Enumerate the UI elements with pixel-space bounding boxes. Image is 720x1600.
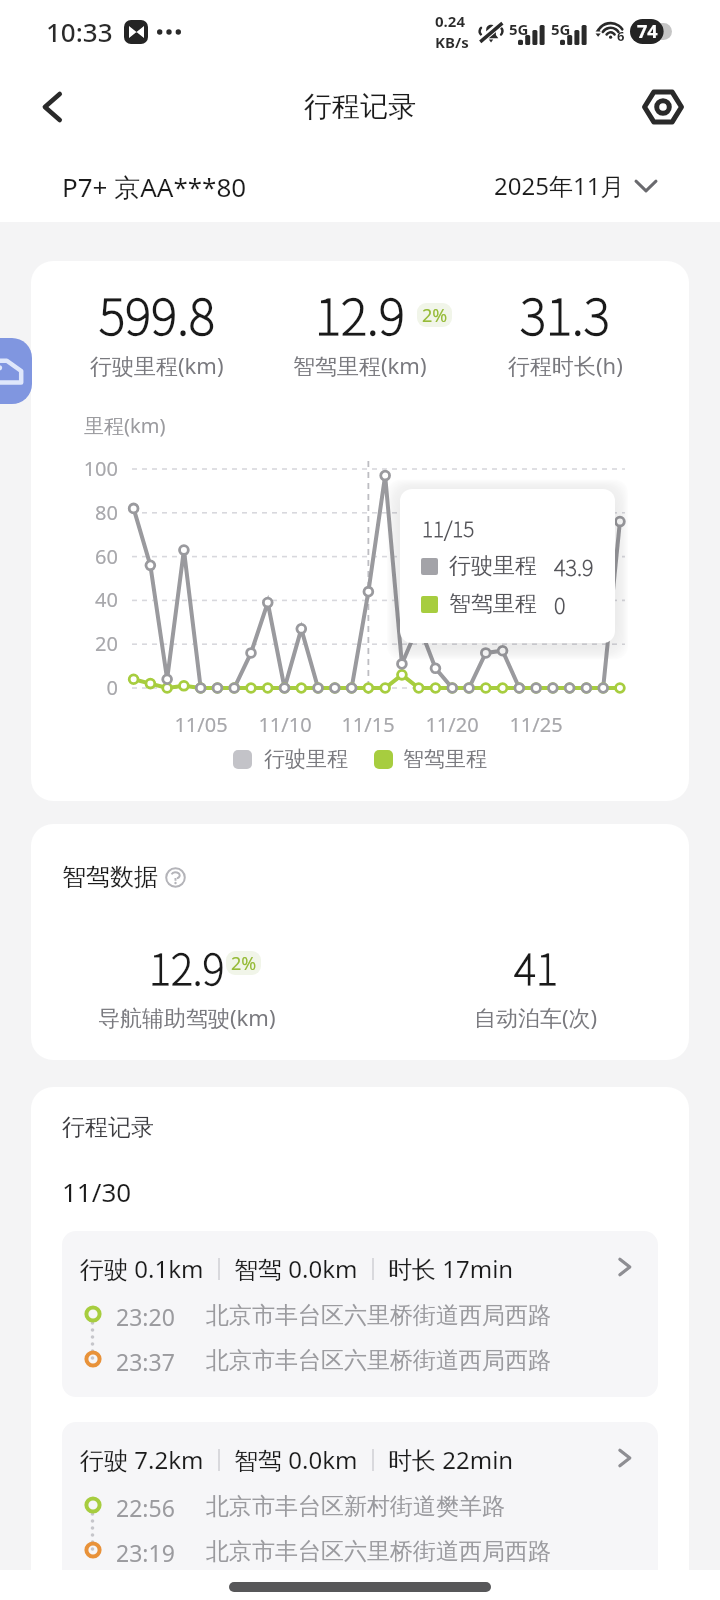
staticText: 0 (38, 674, 118, 701)
staticText: 23:19 (116, 1537, 175, 1568)
staticText: 6 (617, 27, 625, 45)
staticText: 23:20 (116, 1301, 175, 1332)
staticText: 北京市丰台区六里桥街道西局西路 (206, 1301, 551, 1330)
staticText: 11/30 (62, 1174, 132, 1209)
staticText: 0 (554, 588, 566, 620)
staticText: 行驶里程 (264, 746, 348, 772)
staticText: 20 (38, 630, 118, 657)
staticText: 0.24 (435, 11, 465, 31)
staticText: 23:37 (116, 1346, 175, 1377)
staticText: 80 (38, 499, 118, 526)
staticText: 11/15 (328, 711, 408, 738)
staticText: 智驾 0.0km (234, 1443, 358, 1476)
staticText: 行驶 7.2km (80, 1443, 204, 1476)
staticText: 599.8 (99, 277, 215, 349)
staticText: 行程记录 (304, 89, 416, 124)
staticText: 100 (38, 455, 118, 482)
staticText: 74 (637, 19, 658, 44)
staticText: 5G (509, 19, 529, 39)
staticText: 自动泊车(次) (474, 1002, 598, 1032)
button[interactable]: 行驶 7.2km (62, 1422, 658, 1588)
staticText: 41 (514, 936, 558, 997)
button[interactable]: 2025年11月 (494, 169, 656, 202)
staticText: 60 (38, 543, 118, 570)
staticText: 行程时长(h) (508, 350, 623, 380)
staticText: 行驶里程 (449, 552, 537, 580)
staticText: 5G (551, 19, 571, 39)
staticText: 2% (422, 303, 448, 327)
staticText: 12.9 (149, 936, 225, 997)
button[interactable]: Back (28, 83, 76, 131)
staticText: 2025年11月 (494, 169, 625, 202)
staticText: 11/25 (496, 711, 576, 738)
staticText: 北京市丰台区六里桥街道西局西路 (206, 1537, 551, 1566)
staticText: 行驶里程(km) (90, 350, 224, 380)
staticText: 导航辅助驾驶(km) (98, 1002, 276, 1032)
staticText: 11/15 (422, 513, 475, 543)
staticText: 行程记录 (62, 1113, 154, 1142)
staticText: 里程(km) (84, 412, 166, 439)
staticText: 智驾里程 (449, 590, 537, 618)
staticText: KB/s (435, 32, 469, 52)
staticText: 时长 17min (388, 1252, 514, 1285)
button[interactable]: Assistant (0, 338, 32, 404)
staticText: 北京市丰台区新村街道樊羊路 (206, 1492, 505, 1521)
staticText: 11/05 (161, 711, 241, 738)
staticText: 43.9 (554, 550, 594, 582)
staticText: 11/10 (245, 711, 325, 738)
staticText: 北京市丰台区六里桥街道西局西路 (206, 1346, 551, 1375)
staticText: 智驾里程 (403, 746, 487, 772)
staticText: 智驾数据 (62, 862, 158, 892)
button[interactable]: 行驶 0.1km (62, 1231, 658, 1397)
staticText: 2% (231, 951, 257, 975)
staticText: 31.3 (520, 277, 610, 349)
staticText: 行驶 0.1km (80, 1252, 204, 1285)
staticText: 40 (38, 586, 118, 613)
staticText: 10:33 (46, 14, 113, 49)
staticText: 11/20 (412, 711, 492, 738)
staticText: 时长 22min (388, 1443, 514, 1476)
staticText: 智驾里程(km) (293, 350, 427, 380)
staticText: P7+ 京AA***80 (62, 169, 247, 205)
staticText: 22:56 (116, 1492, 175, 1523)
staticText: 智驾 0.0km (234, 1252, 358, 1285)
staticText: 12.9 (315, 277, 405, 349)
button[interactable]: Settings (639, 83, 687, 131)
